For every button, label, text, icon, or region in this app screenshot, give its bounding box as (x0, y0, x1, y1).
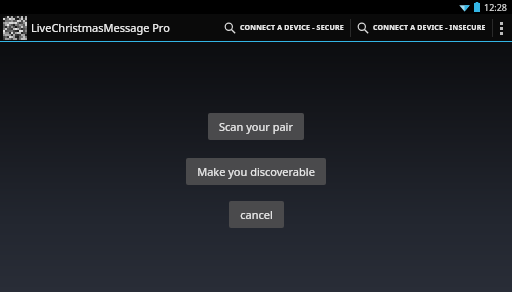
button[interactable]: More options (493, 16, 509, 40)
staticText: Scan your pair (219, 119, 293, 134)
staticText: cancel (240, 207, 273, 222)
staticText: LiveChristmasMessage Pro (31, 20, 170, 35)
button[interactable]: cancel (229, 201, 284, 228)
button[interactable]: CONNECT A DEVICE - SECURE (218, 22, 350, 34)
staticText: CONNECT A DEVICE - INSECURE (373, 23, 486, 33)
button[interactable]: Make you discoverable (186, 158, 326, 185)
staticText: Make you discoverable (197, 164, 315, 179)
button[interactable]: CONNECT A DEVICE - INSECURE (351, 22, 492, 34)
staticText: CONNECT A DEVICE - SECURE (240, 23, 344, 33)
button[interactable]: Scan your pair (208, 113, 304, 140)
staticText: 12:28 (484, 1, 508, 13)
